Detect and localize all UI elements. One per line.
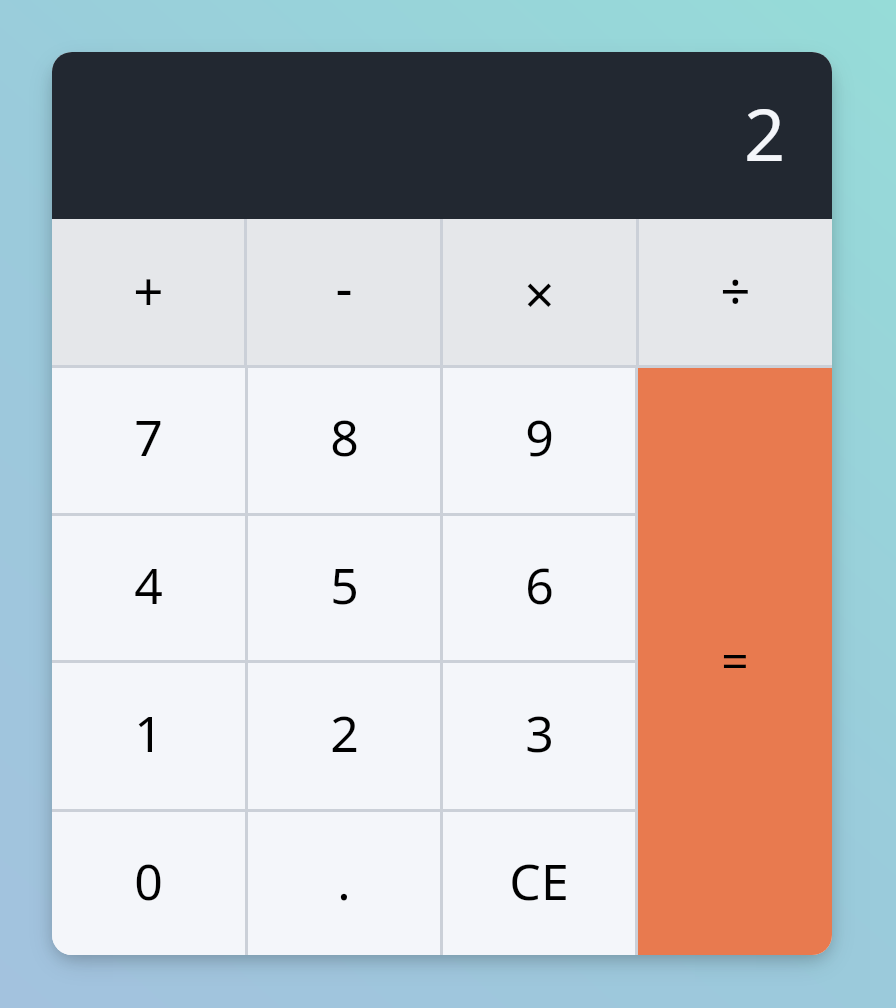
staticText: = xyxy=(721,627,749,692)
staticText: 3 xyxy=(525,699,554,767)
staticText: + xyxy=(133,254,164,326)
staticText: 2 xyxy=(330,699,359,767)
staticText: 5 xyxy=(330,551,359,619)
staticText: 8 xyxy=(330,403,359,471)
button[interactable]: 3 xyxy=(443,663,635,809)
button[interactable]: 8 xyxy=(248,368,440,513)
staticText: ÷ xyxy=(720,253,751,325)
button[interactable]: . xyxy=(248,812,440,955)
button[interactable]: Multiply xyxy=(443,219,636,365)
button[interactable]: 9 xyxy=(443,368,635,513)
button[interactable]: CE xyxy=(443,812,635,955)
button[interactable]: 2 xyxy=(248,663,440,809)
button[interactable]: 2 xyxy=(52,52,832,219)
staticText: 1 xyxy=(134,699,163,767)
staticText: 2 xyxy=(744,84,786,182)
staticText: CE xyxy=(509,847,569,915)
button[interactable]: 7 xyxy=(52,368,245,513)
button[interactable]: 4 xyxy=(52,516,245,660)
button[interactable]: 6 xyxy=(443,516,635,660)
button[interactable]: 0 xyxy=(52,812,245,955)
staticText: 9 xyxy=(525,403,554,471)
staticText: 0 xyxy=(134,847,163,915)
button[interactable]: 1 xyxy=(52,663,245,809)
staticText: × xyxy=(524,257,555,329)
staticText: 7 xyxy=(134,403,163,471)
button[interactable]: Divide xyxy=(639,219,832,365)
staticText: 6 xyxy=(525,551,554,619)
button[interactable]: 5 xyxy=(248,516,440,660)
staticText: - xyxy=(335,250,353,322)
staticText: 4 xyxy=(134,551,163,619)
button[interactable]: Subtract xyxy=(247,219,440,365)
button[interactable]: Add xyxy=(52,219,244,365)
button[interactable]: Equals xyxy=(638,368,832,955)
staticText: . xyxy=(337,847,351,915)
